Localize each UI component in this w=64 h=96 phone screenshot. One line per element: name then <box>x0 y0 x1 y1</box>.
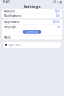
staticText: Account <box>4 9 15 13</box>
staticText: Notifications <box>4 14 21 18</box>
staticText: On <box>56 14 60 18</box>
staticText: Sign out <box>8 43 20 47</box>
staticText: Appearance <box>4 20 20 23</box>
staticText: EN <box>57 25 60 28</box>
staticText: Language <box>4 25 17 28</box>
staticText: Settings <box>23 4 40 9</box>
staticText: Auto <box>53 20 60 23</box>
staticText: ıll ⌾ ▮ <box>53 0 61 4</box>
staticText: Edit <box>55 9 60 13</box>
staticText: 9:41 <box>3 0 10 4</box>
staticText: More <box>4 36 11 39</box>
staticText: Continue <box>25 30 39 34</box>
